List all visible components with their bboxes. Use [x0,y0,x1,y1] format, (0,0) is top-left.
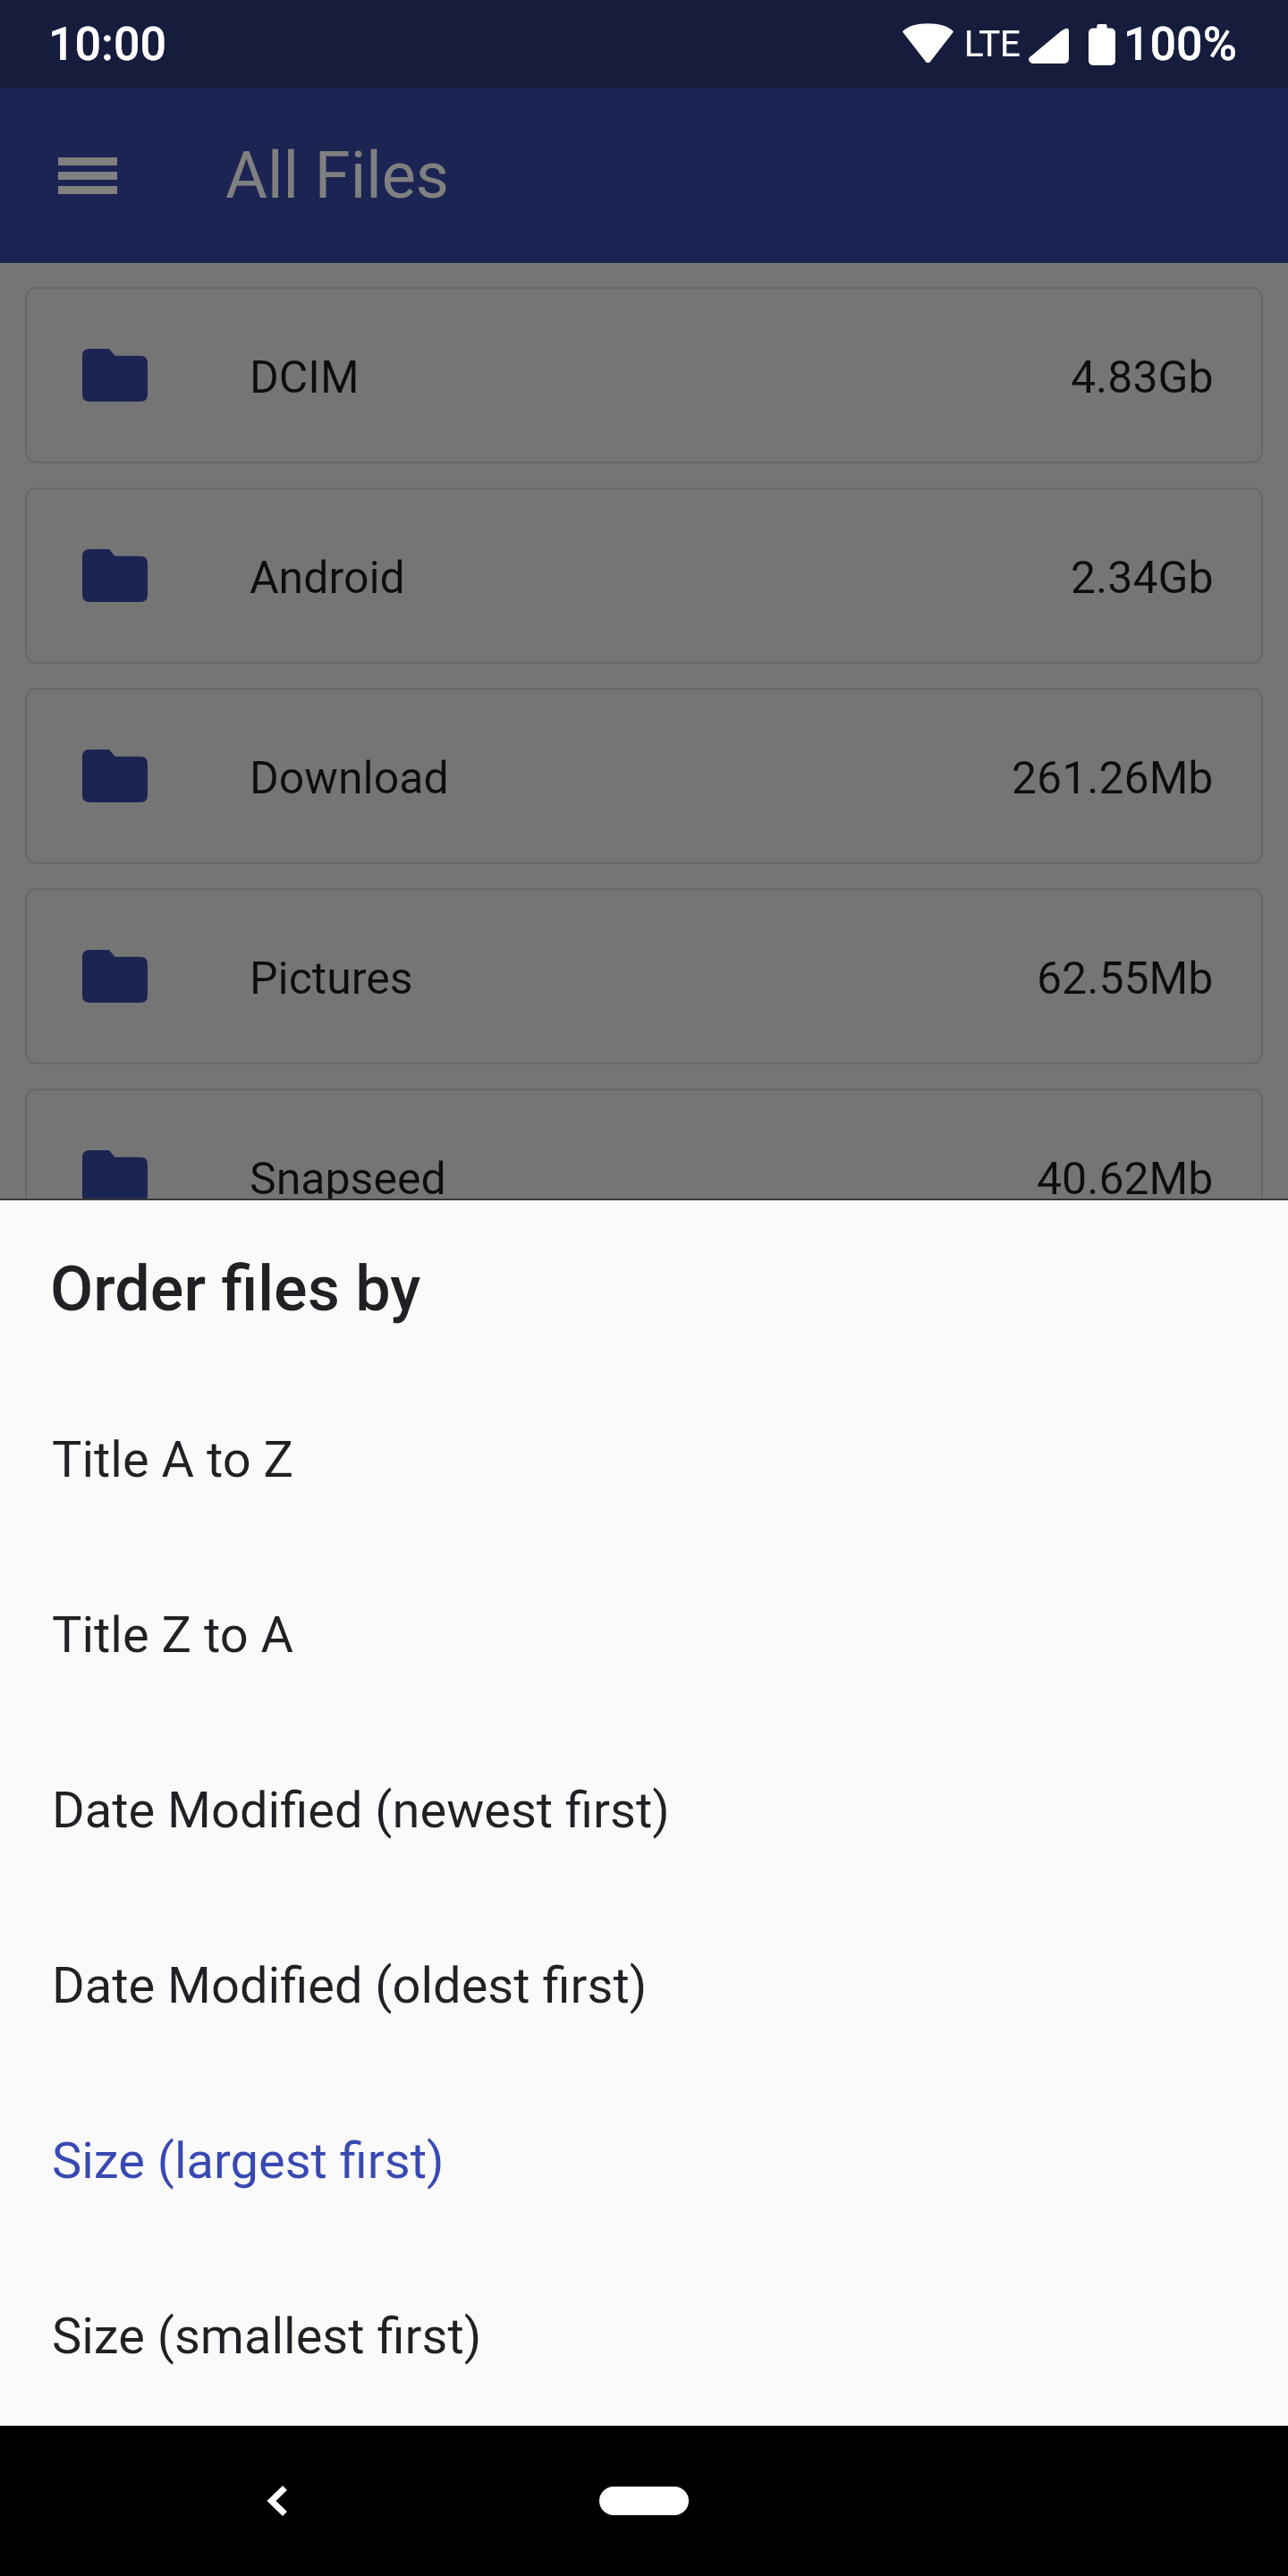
button[interactable]: Size (largest first) [0,2073,1288,2249]
staticText: 261.26Mb [1012,752,1214,805]
button[interactable]: Open navigation menu [44,131,131,219]
staticText: 62.55Mb [1037,953,1214,1005]
button[interactable]: Title Z to A [0,1547,1288,1723]
staticText: 4.83Gb [1071,352,1214,404]
staticText: Size (largest first) [52,2131,445,2190]
staticText: Android [250,552,405,605]
staticText: Snapseed [250,1153,446,1206]
staticText: Order files by [50,1252,421,1326]
button[interactable]: Date Modified (oldest first) [0,1898,1288,2073]
staticText: DCIM [250,352,360,404]
button[interactable]: Pictures [25,888,1263,1064]
button[interactable]: Back [225,2447,332,2555]
button[interactable]: Download [25,688,1263,864]
button[interactable]: Size (smallest first) [0,2249,1288,2424]
staticText: 40.62Mb [1037,1153,1214,1206]
button[interactable]: Date Modified (newest first) [0,1723,1288,1898]
button[interactable]: Android [25,487,1263,664]
staticText: Date Modified (newest first) [52,1781,670,1840]
staticText: Title A to Z [52,1430,294,1489]
staticText: 2.34Gb [1071,552,1214,605]
staticText: Title Z to A [52,1606,294,1665]
button[interactable]: DCIM [25,287,1263,463]
staticText: 10:00 [48,17,167,72]
button[interactable]: Snapseed [25,1089,1263,1265]
staticText: Download [250,752,449,805]
button[interactable]: Title A to Z [0,1372,1288,1547]
staticText: LTE [964,23,1021,65]
staticText: All Files [225,138,449,213]
staticText: Size (smallest first) [52,2307,482,2366]
staticText: Pictures [250,953,413,1005]
staticText: Date Modified (oldest first) [52,1956,648,2015]
button[interactable]: Home [599,2487,689,2515]
staticText: 100% [1123,17,1237,72]
button[interactable]: Movies [25,1289,1263,1465]
